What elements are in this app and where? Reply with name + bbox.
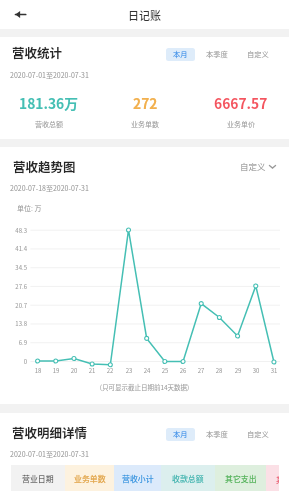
- staticText: 本季度: [206, 429, 228, 440]
- staticText: 2020-07-01至2020-07-31: [10, 449, 89, 459]
- staticText: 41.4: [0, 244, 27, 253]
- button[interactable]: 本季度: [199, 48, 235, 61]
- staticText: 25: [156, 366, 174, 375]
- staticText: 自定义: [240, 160, 266, 172]
- staticText: 23: [120, 366, 138, 375]
- button[interactable]: 营业日期: [11, 465, 65, 491]
- staticText: 0: [0, 357, 27, 366]
- staticText: 本季度: [206, 49, 228, 60]
- staticText: 6.9: [0, 338, 27, 347]
- button[interactable]: Back: [10, 4, 31, 25]
- staticText: 日记账: [128, 7, 161, 23]
- staticText: 26: [174, 366, 192, 375]
- button[interactable]: 其: [266, 465, 279, 491]
- staticText: 营收明细详情: [12, 423, 88, 441]
- staticText: 31: [265, 366, 283, 375]
- staticText: 22: [101, 366, 119, 375]
- staticText: 其它支出: [225, 473, 257, 484]
- button[interactable]: 营收小计: [114, 465, 161, 491]
- staticText: 营收小计: [122, 473, 154, 484]
- staticText: 其: [276, 474, 279, 485]
- staticText: 营业日期: [22, 473, 54, 484]
- staticText: 30: [247, 366, 265, 375]
- staticText: 业务单数: [74, 473, 106, 484]
- button[interactable]: 自定义: [240, 48, 276, 61]
- staticText: 营收统计: [12, 43, 63, 61]
- staticText: 19: [47, 366, 65, 375]
- button[interactable]: 自定义: [240, 428, 276, 441]
- button[interactable]: 其它支出: [215, 465, 266, 491]
- staticText: 13.8: [0, 319, 27, 328]
- staticText: 29: [229, 366, 247, 375]
- button[interactable]: 业务单数: [65, 465, 114, 491]
- staticText: 272: [133, 93, 158, 113]
- staticText: 单位: 万: [17, 203, 42, 213]
- button[interactable]: 收款总额: [161, 465, 215, 491]
- staticText: 24: [138, 366, 156, 375]
- staticText: 27.6: [0, 282, 27, 291]
- staticText: 业务单数: [131, 119, 159, 129]
- staticText: 本月: [173, 429, 188, 440]
- staticText: 34.5: [0, 263, 27, 272]
- staticText: 27: [192, 366, 210, 375]
- staticText: 收款总额: [172, 473, 204, 484]
- button[interactable]: 本季度: [199, 428, 235, 441]
- staticText: 营收总额: [35, 119, 63, 129]
- staticText: 18: [29, 366, 47, 375]
- staticText: (只可显示截止日期前14天数据): [0, 382, 289, 391]
- staticText: 自定义: [247, 429, 269, 440]
- button[interactable]: 本月: [166, 428, 195, 441]
- staticText: 6667.57: [214, 93, 268, 113]
- staticText: 本月: [173, 49, 188, 60]
- staticText: 业务单价: [227, 119, 255, 129]
- staticText: 20: [65, 366, 83, 375]
- staticText: 2020-07-18至2020-07-31: [10, 183, 89, 193]
- button[interactable]: 自定义: [240, 160, 277, 172]
- staticText: 营收趋势图: [13, 157, 76, 175]
- staticText: 自定义: [247, 49, 269, 60]
- staticText: 2020-07-01至2020-07-31: [10, 70, 89, 80]
- staticText: 20.7: [0, 301, 27, 310]
- staticText: 21: [83, 366, 101, 375]
- staticText: 28: [210, 366, 228, 375]
- button[interactable]: 本月: [166, 48, 195, 61]
- staticText: 181.36万: [19, 93, 78, 113]
- staticText: 48.3: [0, 226, 27, 235]
